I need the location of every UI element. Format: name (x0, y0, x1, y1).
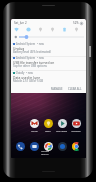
staticText: Google Search (41, 149, 55, 155)
button[interactable]: Wi-Fi (13, 26, 19, 32)
staticText: Gmail (31, 129, 38, 132)
button[interactable]: Keep Notes (41, 119, 55, 132)
button[interactable]: Brightness (14, 35, 84, 39)
button[interactable]: Play Store (55, 119, 69, 132)
button[interactable]: Airplane mode (73, 26, 79, 32)
staticText: Android System (16, 56, 36, 60)
staticText: 52% (73, 21, 79, 25)
staticText: YouTube (71, 129, 81, 132)
button[interactable]: Google Search (41, 142, 55, 155)
button[interactable]: CLEAR ALL (66, 87, 84, 91)
staticText: Tap for other USB options (13, 64, 47, 68)
button[interactable]: Battery Saver (61, 26, 67, 32)
button[interactable]: MANAGE (49, 87, 65, 91)
button[interactable]: Messages (27, 142, 41, 155)
staticText: MANAGE (51, 87, 63, 91)
button[interactable]: Photos (55, 142, 69, 155)
staticText: Android System (16, 42, 36, 46)
staticText: Datally (16, 71, 25, 75)
button[interactable]: Datally (11, 71, 86, 85)
staticText: USB file transfer turned on (13, 60, 55, 64)
staticText: • now (37, 56, 44, 60)
button[interactable]: Do Not Disturb (37, 26, 43, 32)
staticText: Mobile 2.51 GB of 5 GB (13, 79, 44, 83)
staticText: Sat, Jun 2 (14, 21, 27, 25)
button[interactable]: YouTube (69, 119, 83, 132)
staticText: Unplug (13, 46, 25, 50)
staticText: CLEAR ALL (68, 87, 82, 91)
staticText: Data used in June (13, 75, 41, 79)
button[interactable]: Flashlight (49, 26, 55, 32)
staticText: Battery level 45% (estimated) (13, 50, 52, 54)
button[interactable]: Bluetooth (25, 26, 31, 32)
staticText: • now (37, 42, 44, 46)
button[interactable]: Gmail (27, 119, 41, 132)
button[interactable]: Phone (13, 142, 27, 155)
button[interactable]: Android System (11, 56, 86, 70)
staticText: Keep (45, 129, 51, 132)
button[interactable]: Chrome (69, 142, 83, 155)
button[interactable]: Android System (11, 42, 86, 56)
staticText: Play Store (56, 129, 68, 132)
staticText: • now (26, 71, 33, 75)
